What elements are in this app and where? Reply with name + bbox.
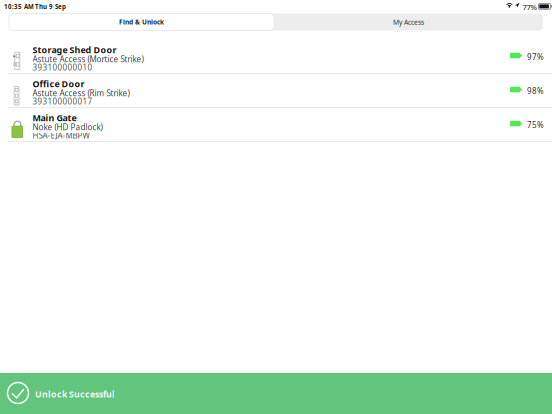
staticText: Noke (HD Padlock) [32,122,102,133]
staticText: Find & Unlock [119,18,164,26]
staticText: Storage Shed Door [32,44,116,56]
staticText: 98% [527,86,544,96]
staticText: 77% [522,2,536,12]
button[interactable]: My Access [274,13,543,30]
staticText: 10:35 AM [4,2,34,11]
staticText: Thu 9 Sep [35,2,66,11]
staticText: 97% [527,52,544,62]
button[interactable]: Office Door [0,74,552,108]
staticText: 75% [527,120,544,130]
staticText: 393100000017 [32,96,92,107]
staticText: My Access [393,17,424,27]
staticText: HSA-EJA-MBPW [32,130,89,141]
staticText: Main Gate [32,112,76,124]
staticText: Office Door [32,78,84,90]
button[interactable]: Storage Shed Door [0,40,552,74]
button[interactable]: Find & Unlock [9,13,274,30]
staticText: Unlock Successful [35,388,115,400]
staticText: Astute Access (Mortice Strike) [32,54,143,65]
staticText: Astute Access (Rim Strike) [32,88,129,99]
staticText: 393100000010 [32,62,92,73]
button[interactable]: Main Gate [0,108,552,142]
